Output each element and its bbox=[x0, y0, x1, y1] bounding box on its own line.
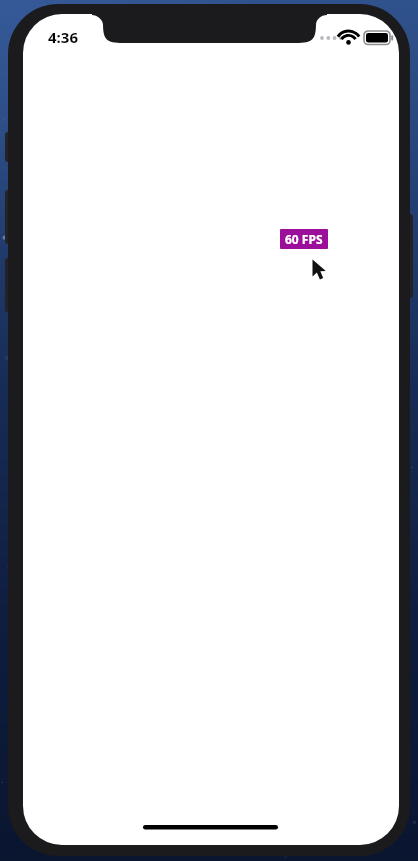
staticText: 60 FPS bbox=[285, 231, 323, 247]
button[interactable]: 4:36 bbox=[48, 27, 78, 47]
other: Pointer bbox=[311, 259, 329, 283]
staticText: 4:36 bbox=[48, 27, 78, 47]
button[interactable]: 60 FPS bbox=[280, 229, 328, 249]
